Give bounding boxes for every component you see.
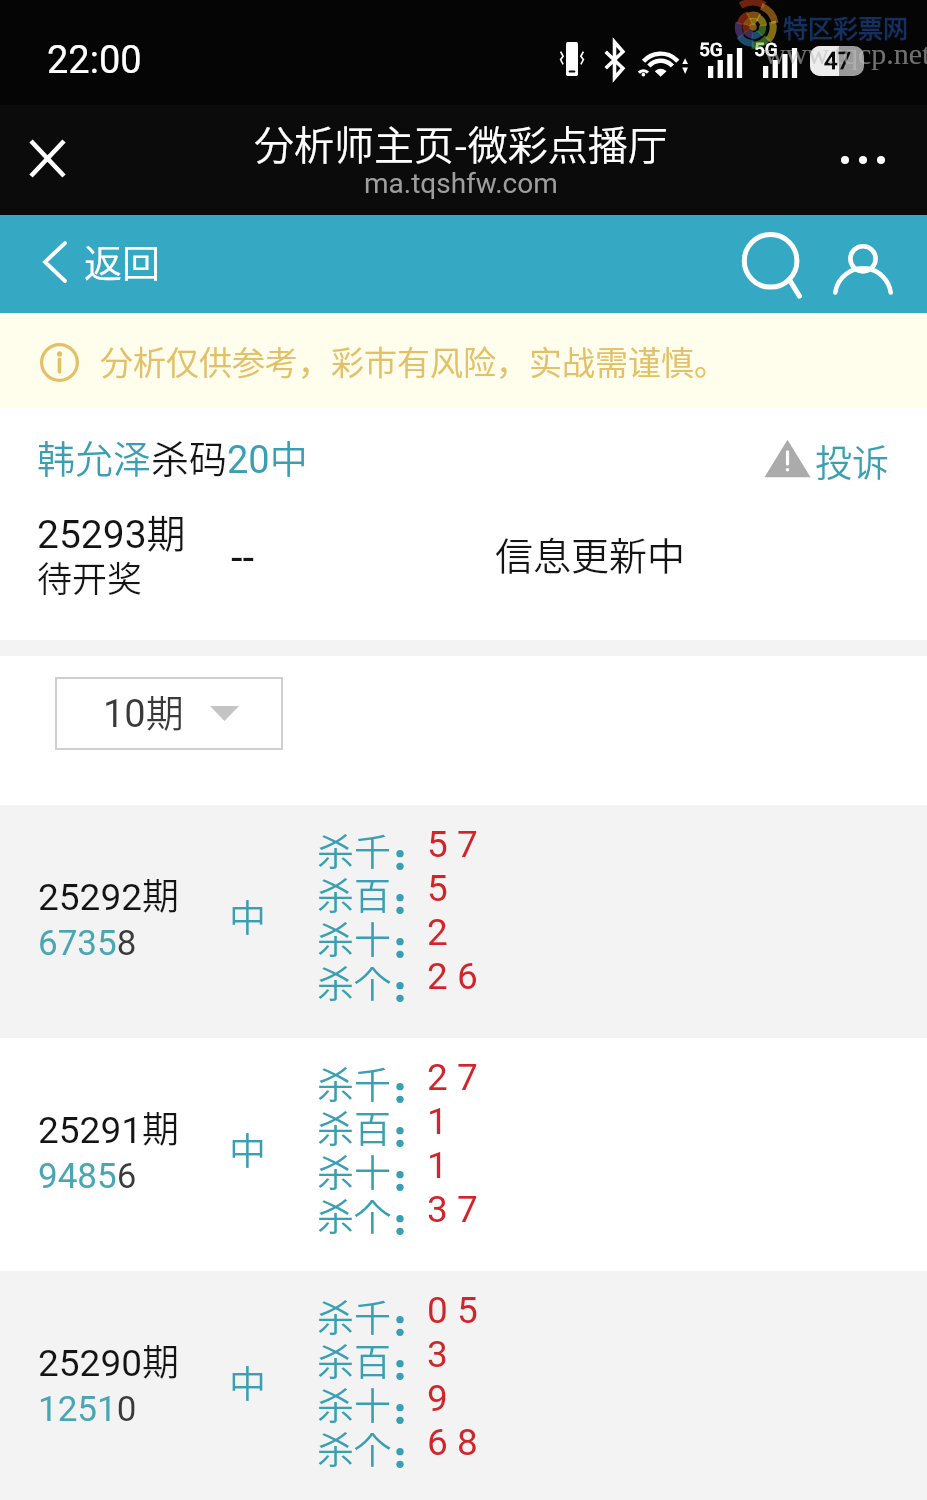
staticText: 杀百	[317, 1100, 391, 1154]
staticText: 1	[427, 1144, 448, 1187]
button[interactable]: Search	[733, 228, 811, 306]
staticText: 杀个	[317, 955, 391, 1009]
staticText: 5G	[699, 38, 723, 60]
staticText: 分析仅供参考，彩市有风险，实战需谨慎。	[100, 337, 727, 385]
staticText: 12510	[38, 1389, 137, 1430]
staticText: 杀十	[317, 1377, 391, 1431]
button[interactable]: Close	[11, 122, 83, 194]
staticText: 3	[427, 1333, 448, 1376]
staticText: 2 7	[427, 1056, 478, 1099]
button[interactable]: 25291期	[0, 1038, 927, 1271]
staticText: 杀个	[317, 1421, 391, 1475]
staticText: 中	[229, 1122, 266, 1176]
button[interactable]: More options	[825, 122, 901, 198]
staticText: 25292期	[38, 867, 179, 921]
staticText: 特区彩票网	[783, 9, 909, 45]
button[interactable]: 投诉	[756, 421, 896, 487]
staticText: 杀千	[317, 1056, 391, 1110]
staticText: 25290期	[38, 1333, 179, 1387]
staticText: 信息更新中	[495, 526, 686, 581]
staticText: 杀百	[317, 1333, 391, 1387]
staticText: 0 5	[427, 1289, 478, 1332]
staticText: 9	[427, 1377, 448, 1420]
button[interactable]: 10期	[55, 677, 283, 750]
staticText: 47	[824, 47, 851, 75]
staticText: 返回	[84, 233, 161, 288]
staticText: 杀十	[317, 911, 391, 965]
staticText: 10期	[103, 683, 184, 738]
staticText: 2 6	[427, 955, 478, 998]
button[interactable]: 返回	[43, 234, 161, 289]
staticText: 投诉	[815, 434, 889, 488]
staticText: 韩允泽杀码20中	[37, 429, 308, 484]
staticText: 5G	[754, 38, 778, 60]
staticText: 中	[229, 1355, 266, 1409]
staticText: 杀十	[317, 1144, 391, 1198]
staticText: 5	[427, 867, 448, 910]
staticText: 杀千	[317, 823, 391, 877]
staticText: 25291期	[38, 1100, 179, 1154]
staticText: 分析师主页-微彩点播厅	[254, 114, 668, 172]
button[interactable]: 25290期	[0, 1271, 927, 1500]
staticText: 杀千	[317, 1289, 391, 1343]
staticText: --	[231, 533, 255, 582]
staticText: 3 7	[427, 1188, 478, 1231]
staticText: 杀个	[317, 1188, 391, 1242]
staticText: 1	[427, 1100, 448, 1143]
staticText: 94856	[38, 1156, 137, 1197]
staticText: 67358	[38, 923, 137, 964]
staticText: 5 7	[427, 823, 478, 866]
staticText: www.tqcp.net	[764, 37, 927, 70]
staticText: 6 8	[427, 1421, 478, 1464]
button[interactable]: Account	[827, 237, 899, 309]
staticText: 待开奖	[37, 551, 143, 602]
staticText: 25293期	[37, 503, 186, 559]
staticText: 22:00	[47, 38, 142, 83]
staticText: 中	[229, 889, 266, 943]
staticText: 2	[427, 911, 448, 954]
staticText: ma.tqshfw.com	[364, 167, 558, 200]
staticText: 杀百	[317, 867, 391, 921]
button[interactable]: 25292期	[0, 805, 927, 1038]
